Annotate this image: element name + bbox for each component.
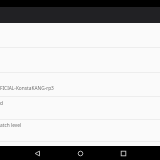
button[interactable] [0, 72, 160, 96]
staticText: atch level [0, 122, 22, 129]
staticText: FICIAL-KonstaKANG-rp3 [0, 85, 54, 92]
button[interactable] [0, 119, 160, 141]
button[interactable]: Back [26, 146, 48, 160]
button[interactable]: Recent apps [112, 146, 134, 160]
staticText: d [0, 100, 3, 107]
button[interactable]: Home [69, 146, 91, 160]
button[interactable] [0, 96, 160, 119]
